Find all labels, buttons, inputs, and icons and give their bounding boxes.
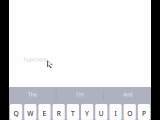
staticText: Q: [14, 109, 19, 118]
button[interactable]: T: [67, 104, 79, 120]
staticText: O: [127, 109, 132, 118]
staticText: The: [28, 91, 37, 98]
staticText: I: [114, 109, 116, 118]
button[interactable]: R: [53, 104, 65, 120]
button[interactable]: I'm: [57, 87, 103, 104]
staticText: E: [42, 109, 46, 118]
button[interactable]: P: [138, 104, 150, 120]
staticText: P: [142, 109, 146, 118]
staticText: R: [57, 109, 61, 118]
staticText: U: [99, 109, 104, 118]
staticText: And: [123, 91, 132, 98]
staticText: Type here: [23, 56, 47, 63]
button[interactable]: I: [109, 104, 122, 120]
button[interactable]: W: [24, 104, 36, 120]
staticText: W: [27, 109, 33, 118]
staticText: T: [71, 109, 75, 118]
button[interactable]: And: [104, 87, 151, 104]
staticText: Y: [85, 109, 89, 118]
button[interactable]: Q: [10, 104, 22, 120]
button[interactable]: Type here: [23, 56, 47, 63]
button[interactable]: O: [124, 104, 136, 120]
button[interactable]: The: [9, 87, 56, 104]
button[interactable]: Y: [81, 104, 93, 120]
staticText: I'm: [76, 91, 84, 98]
button[interactable]: E: [38, 104, 51, 120]
button[interactable]: U: [95, 104, 107, 120]
